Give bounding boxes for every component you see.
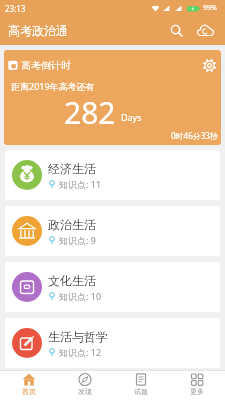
staticText: 更多 xyxy=(190,387,204,396)
staticText: 知识点: 9 xyxy=(59,234,96,246)
button[interactable]: 高考倒计时 xyxy=(4,50,221,145)
staticText: 政治生活 xyxy=(48,217,96,232)
staticText: 知识点: 11 xyxy=(59,178,102,190)
staticText: 文化生活 xyxy=(48,273,96,288)
button[interactable]: 试题 xyxy=(113,371,169,400)
staticText: 试题 xyxy=(134,387,148,396)
staticText: 发现 xyxy=(78,387,92,396)
button[interactable] xyxy=(200,56,218,74)
button[interactable]: 更多 xyxy=(169,371,225,400)
staticText: 生活与哲学 xyxy=(48,329,108,344)
staticText: 高考政治通 xyxy=(8,23,68,38)
staticText: 0时46分33秒 xyxy=(171,130,218,141)
staticText: 23:13 xyxy=(5,3,26,14)
button[interactable]: 经济生活 xyxy=(5,150,220,200)
button[interactable] xyxy=(191,16,220,45)
staticText: 首页 xyxy=(22,387,36,396)
staticText: 高考倒计时 xyxy=(21,59,71,72)
staticText: 知识点: 12 xyxy=(59,346,102,358)
button[interactable]: 文化生活 xyxy=(5,262,220,312)
staticText: 99% xyxy=(203,3,217,13)
staticText: 282 xyxy=(64,92,116,130)
staticText: 距离2019年高考还有 xyxy=(11,80,95,92)
staticText: 知识点: 10 xyxy=(59,290,102,302)
button[interactable] xyxy=(162,16,191,45)
staticText: Days xyxy=(121,111,142,123)
button[interactable]: 生活与哲学 xyxy=(5,318,220,368)
staticText: 经济生活 xyxy=(48,161,96,176)
button[interactable]: 首页 xyxy=(0,371,57,400)
button[interactable]: 发现 xyxy=(57,371,113,400)
button[interactable]: 政治生活 xyxy=(5,206,220,256)
